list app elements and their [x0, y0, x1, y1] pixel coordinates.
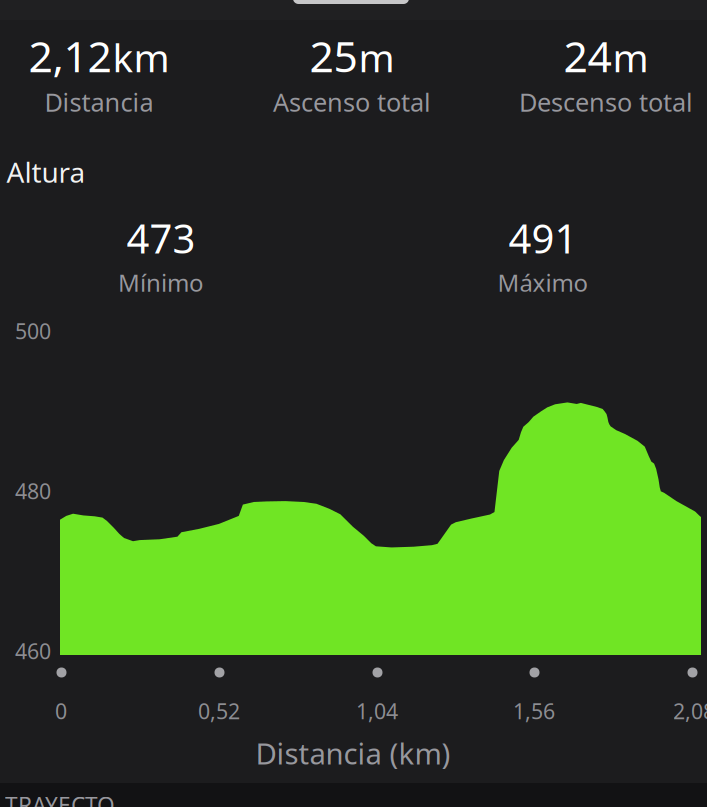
- staticText: 1,56: [513, 697, 555, 725]
- staticText: 0: [55, 697, 67, 725]
- staticText: 473: [126, 211, 195, 265]
- staticText: 480: [15, 477, 51, 505]
- staticText: 460: [15, 637, 51, 665]
- staticText: Ascenso total: [273, 85, 431, 119]
- staticText: 0,52: [198, 697, 240, 725]
- staticText: 1,04: [356, 697, 398, 725]
- button[interactable]: Sheet grabber: [293, 0, 409, 4]
- staticText: Altura: [6, 153, 85, 191]
- staticText: 500: [15, 317, 51, 345]
- staticText: 491: [508, 211, 577, 265]
- staticText: 25: [309, 27, 357, 84]
- staticText: TRAYECTO: [5, 790, 115, 807]
- staticText: m: [612, 32, 648, 83]
- staticText: m: [358, 32, 394, 83]
- staticText: Distancia (km): [255, 733, 450, 772]
- staticText: Máximo: [497, 267, 588, 298]
- staticText: Distancia: [44, 85, 153, 119]
- staticText: 2,08: [673, 697, 707, 725]
- staticText: Descenso total: [519, 85, 693, 119]
- staticText: 2,12: [28, 27, 111, 84]
- staticText: 24: [563, 27, 611, 84]
- staticText: km: [112, 32, 169, 83]
- staticText: Mínimo: [118, 267, 204, 298]
